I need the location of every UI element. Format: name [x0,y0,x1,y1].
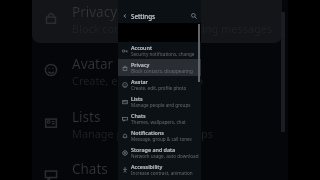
button[interactable]: Search [189,11,198,20]
staticText: Accessibility [131,163,163,170]
staticText: Themes, wallpapers, chat history [72,178,240,180]
staticText: Increase contrast, animation [131,170,193,176]
button[interactable]: Back [120,11,129,20]
button[interactable]: Storage and data [118,144,201,161]
staticText: Settings [131,12,156,20]
button[interactable]: Account [118,42,201,59]
staticText: Notifications [131,129,164,136]
staticText: Privacy [131,61,150,68]
button[interactable]: Chats [118,110,201,127]
staticText: Chats [72,160,108,178]
button[interactable]: Avatar [118,76,201,93]
staticText: Security notifications, change number [131,51,200,57]
staticText: Themes, wallpapers, chat history [131,119,200,125]
button[interactable]: Lists [118,93,201,110]
staticText: Avatar [131,78,148,85]
staticText: Manage people and groups [72,126,213,141]
staticText: Lists [131,95,143,102]
staticText: Manage people and groups [131,102,191,108]
staticText: Block contacts, disappearing messages [131,68,200,74]
staticText: Chats [131,112,146,119]
staticText: Message, group & call tones [131,136,192,142]
button[interactable]: Privacy [118,59,201,76]
staticText: Create, edit, profile photo [72,73,204,88]
staticText: Block contacts, disappearing messages [72,21,273,36]
staticText: Lists [72,108,101,126]
staticText: Storage and data [131,146,176,153]
staticText: Account [131,44,152,51]
button[interactable]: Notifications [118,127,201,144]
staticText: Network usage, auto download [131,153,199,159]
staticText: Privacy [72,3,118,21]
staticText: Avatar [72,55,114,73]
staticText: Create, edit, profile photo [131,85,187,91]
button[interactable]: Accessibility [118,161,201,178]
